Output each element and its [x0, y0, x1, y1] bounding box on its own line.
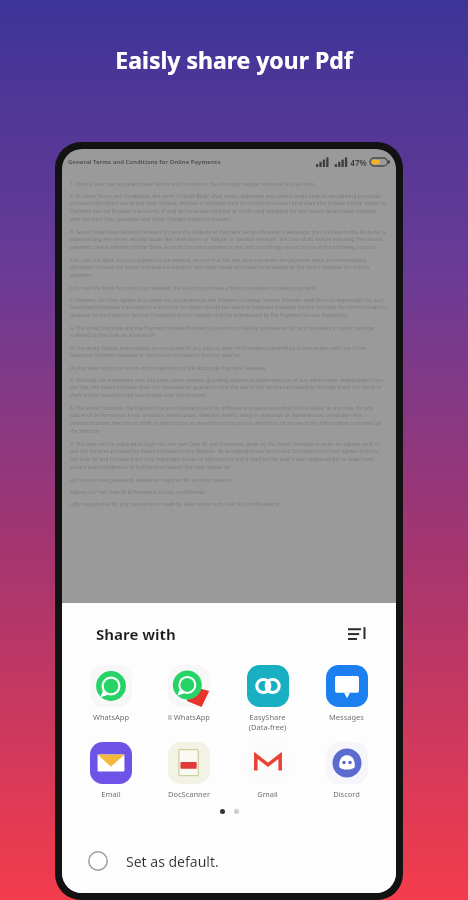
- staticText: Discord: [307, 789, 386, 799]
- staticText: c.However, the User agrees that under no…: [70, 296, 388, 319]
- staticText: EasyShare (Data-free): [228, 712, 307, 732]
- staticText: a)Choose a new password, whenever requir…: [70, 476, 388, 483]
- button[interactable]: EasyShare (Data-free): [228, 663, 307, 734]
- staticText: Email: [72, 789, 150, 799]
- staticText: Messages: [307, 712, 386, 722]
- button[interactable]: DocScanner: [150, 740, 228, 801]
- staticText: Set as default.: [126, 852, 219, 871]
- staticText: 2. In these Terms and Conditions, the te…: [70, 192, 388, 223]
- staticText: Share with: [96, 624, 176, 644]
- button[interactable]: ll WhatsApp: [150, 663, 228, 724]
- button[interactable]: Messages: [307, 663, 386, 724]
- staticText: WhatsApp: [72, 712, 150, 722]
- staticText: 7. The User will be required to login hi…: [70, 440, 388, 471]
- staticText: General Terms and Conditions for Online …: [68, 158, 316, 166]
- staticText: 4. The Vmart Institute and the Payment S…: [70, 324, 388, 339]
- staticText: 5. Although all reasonable care has been…: [70, 376, 388, 399]
- staticText: b.In case the Bank Account is not debite…: [70, 284, 388, 291]
- button[interactable]: Sort: [342, 619, 372, 649]
- button[interactable]: WhatsApp: [72, 663, 150, 724]
- staticText: ll WhatsApp: [150, 712, 228, 722]
- staticText: 6. The Vmart Institute, the Payment Serv…: [70, 404, 388, 435]
- staticText: c)Be responsible for any transactions ma…: [70, 500, 388, 507]
- staticText: b)Keep his/ her User ID & Password stric…: [70, 488, 388, 495]
- staticText: Eaisly share your Pdf: [115, 44, 353, 75]
- staticText: 3. Server Slow Down/Session Timeout: In …: [70, 228, 388, 251]
- staticText: a.In case the Bank Account appears to be…: [70, 256, 388, 279]
- staticText: 47%: [350, 157, 367, 168]
- staticText: (i) The delay, failure, interruption, or…: [70, 344, 388, 359]
- button[interactable]: Discord: [307, 740, 386, 801]
- staticText: 1. Once a User has accepted these Terms …: [70, 180, 388, 187]
- staticText: DocScanner: [150, 789, 228, 799]
- button[interactable]: Set as default.: [62, 833, 396, 889]
- button[interactable]: Email: [72, 740, 150, 801]
- staticText: (ii) Any interruption or errors in the o…: [70, 364, 388, 371]
- staticText: Gmail: [228, 789, 307, 799]
- button[interactable]: Gmail: [228, 740, 307, 801]
